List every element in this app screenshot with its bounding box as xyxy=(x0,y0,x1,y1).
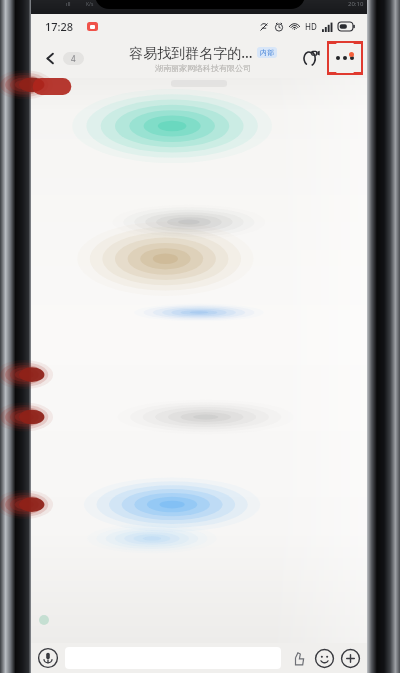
staticText: 湖南丽家网络科技有限公司 xyxy=(155,63,251,73)
staticText: K/s xyxy=(86,1,94,8)
staticText: HD xyxy=(305,21,317,32)
button[interactable]: Back, 4 unread xyxy=(37,47,90,70)
button[interactable]: Emoji xyxy=(313,647,335,669)
staticText: 4 xyxy=(71,53,76,64)
button[interactable]: Voice and video call xyxy=(298,45,325,72)
button[interactable]: Voice message xyxy=(37,647,59,669)
button[interactable]: Thumbs up xyxy=(287,647,309,669)
staticText: 20:10 xyxy=(348,0,364,8)
staticText: 容易找到群名字的… xyxy=(129,43,253,62)
staticText: 17:28 xyxy=(45,19,74,34)
staticText: ıll xyxy=(66,0,71,8)
button[interactable]: More options xyxy=(327,41,363,75)
button[interactable]: More functions xyxy=(339,647,361,669)
staticText: 内部 xyxy=(260,48,274,57)
